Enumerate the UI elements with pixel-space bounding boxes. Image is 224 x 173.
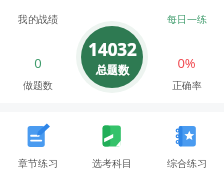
staticText: 14032	[88, 38, 137, 61]
staticText: 正确率	[172, 79, 202, 92]
staticText: 综合练习	[167, 157, 207, 170]
button[interactable]: 综合练习	[150, 112, 224, 173]
staticText: 每日一练	[167, 13, 207, 26]
button[interactable]: 章节练习	[1, 112, 75, 173]
button[interactable]: 选考科目	[75, 112, 149, 173]
staticText: 总题数	[96, 63, 129, 77]
staticText: 我的战绩	[18, 13, 58, 26]
other: 综合练习	[174, 123, 200, 149]
staticText: 0%	[177, 54, 196, 72]
button[interactable]: 14032	[76, 21, 148, 93]
staticText: 选考科目	[92, 157, 132, 170]
staticText: 章节练习	[18, 157, 58, 170]
staticText: 0	[34, 54, 42, 72]
staticText: 做题数	[23, 79, 53, 92]
button[interactable]: 我的战绩	[0, 0, 75, 103]
button[interactable]: 每日一练	[149, 0, 224, 103]
other: 章节练习	[25, 123, 51, 149]
other: 选考科目	[99, 123, 125, 149]
